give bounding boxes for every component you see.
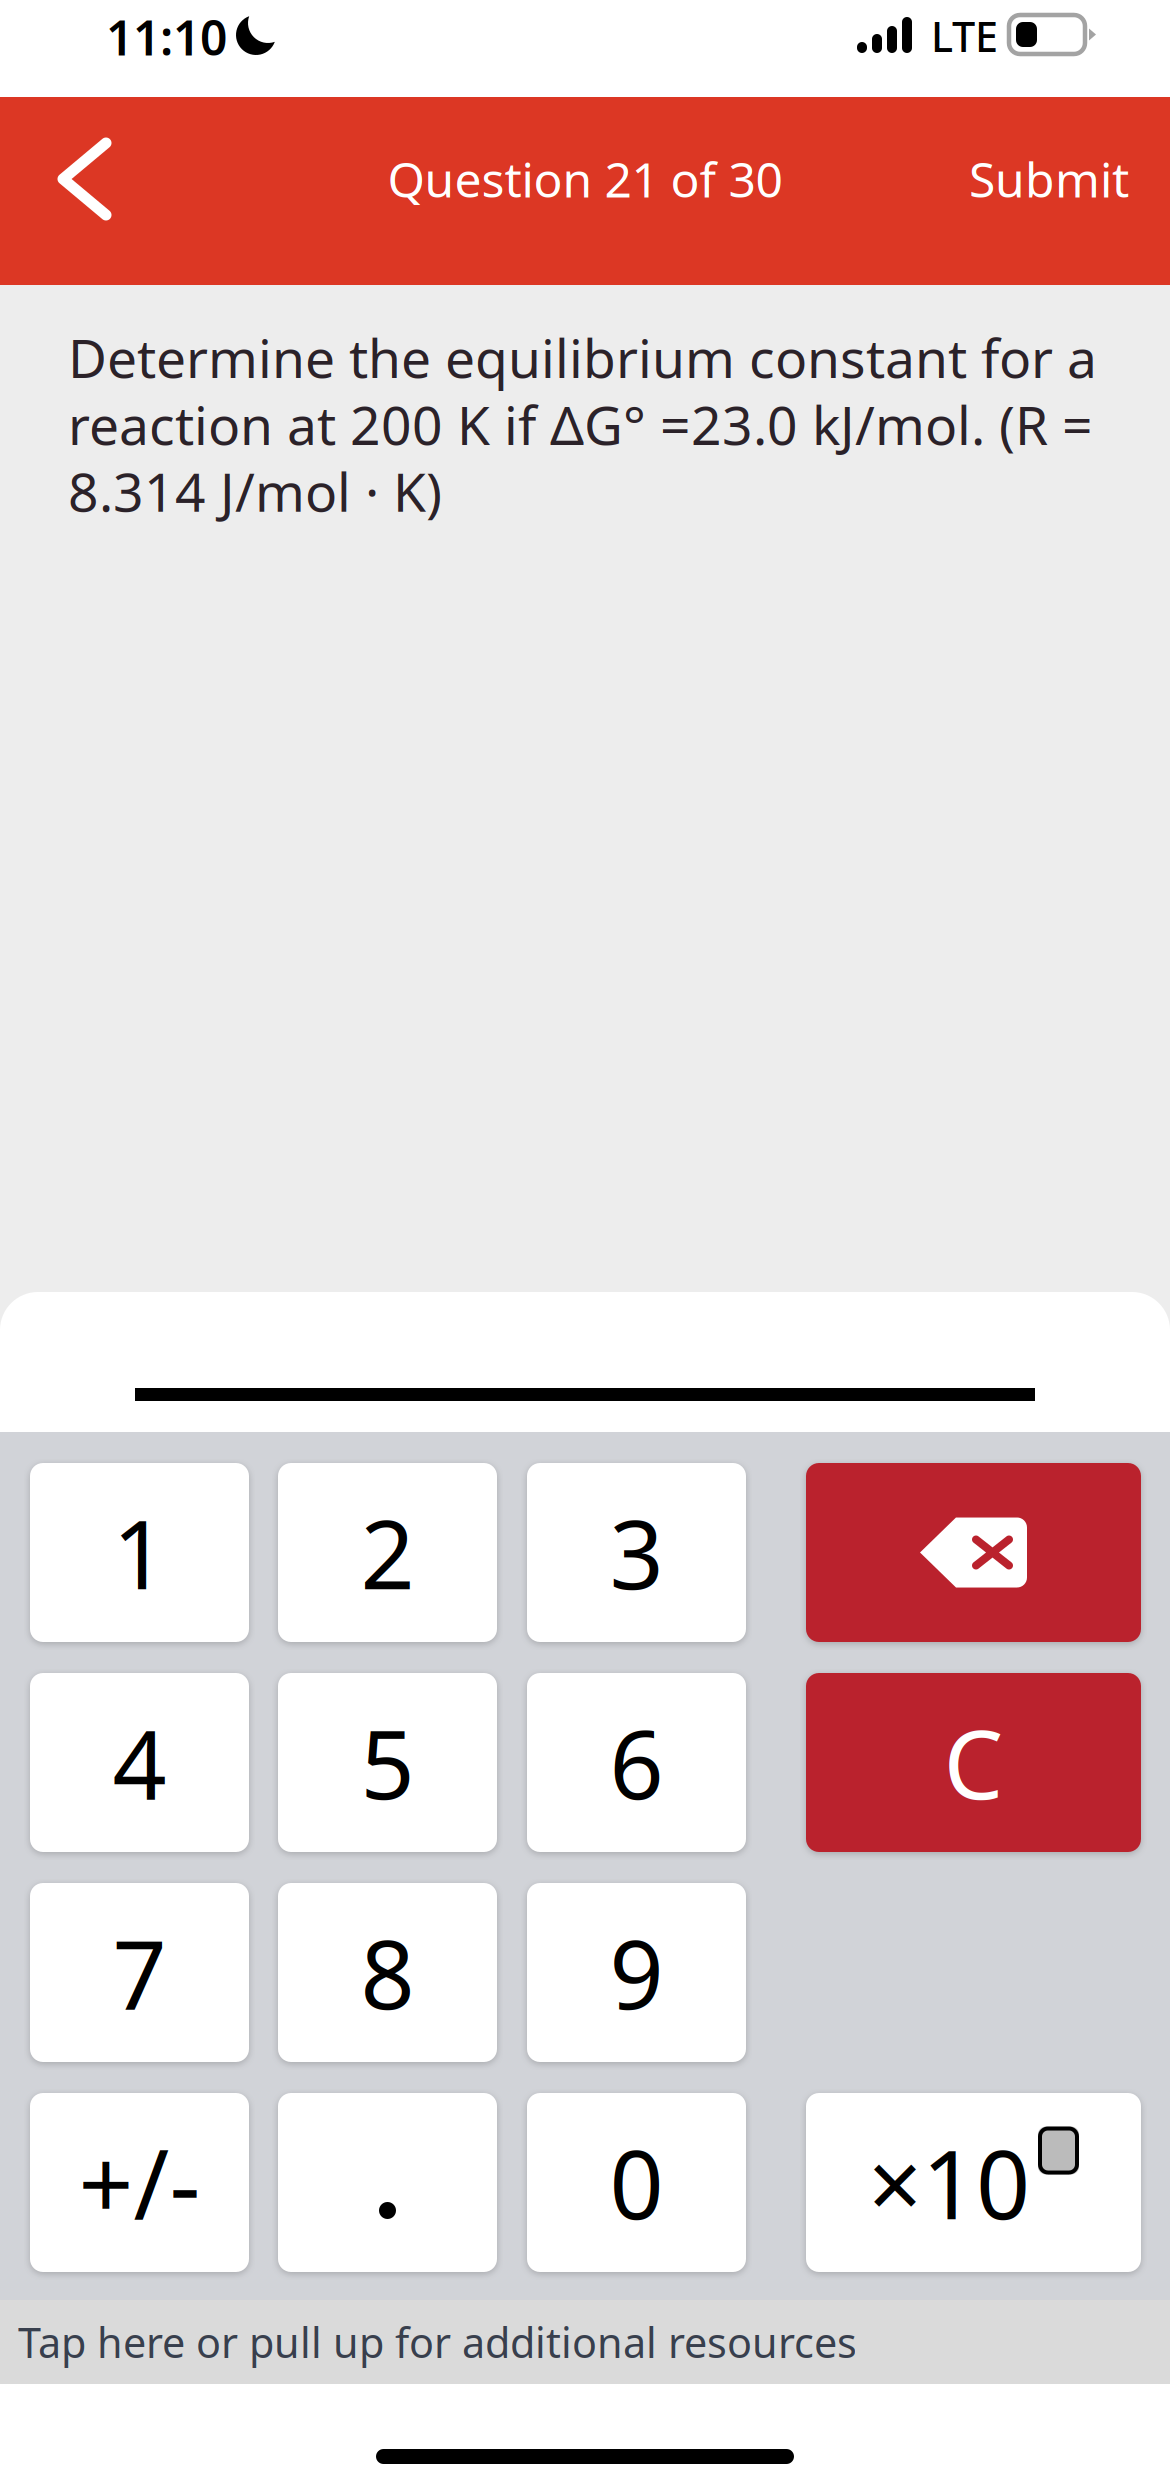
button[interactable]: 4: [30, 1673, 249, 1852]
button[interactable]: Tap here or pull up for additional resou…: [0, 2300, 1152, 2384]
button[interactable]: +/-: [30, 2093, 249, 2272]
staticText: 3: [609, 1490, 663, 1615]
button[interactable]: Delete: [806, 1463, 1141, 1642]
button[interactable]: 9: [527, 1883, 746, 2062]
staticText: 2: [360, 1490, 414, 1615]
button[interactable]: 6: [527, 1673, 746, 1852]
button[interactable]: Decimal point: [278, 2093, 497, 2272]
button[interactable]: 5: [278, 1673, 497, 1852]
staticText: Question 21 of 30: [387, 147, 782, 211]
button[interactable]: Submit: [944, 101, 1154, 257]
staticText: 1: [112, 1490, 166, 1615]
button[interactable]: 2: [278, 1463, 497, 1642]
button[interactable]: 7: [30, 1883, 249, 2062]
button[interactable]: 8: [278, 1883, 497, 2062]
staticText: +/-: [78, 2119, 200, 2246]
staticText: 9: [609, 1910, 663, 2035]
staticText: LTE: [931, 9, 998, 63]
staticText: 11:10: [106, 5, 227, 69]
button[interactable]: 3: [527, 1463, 746, 1642]
staticText: 4: [112, 1700, 166, 1825]
button[interactable]: 0: [527, 2093, 746, 2272]
staticText: ×10: [868, 2120, 1030, 2245]
staticText: 0: [609, 2120, 663, 2245]
staticText: Submit: [969, 147, 1129, 211]
staticText: 8: [360, 1910, 414, 2035]
staticText: C: [943, 1700, 1003, 1825]
button[interactable]: 1: [30, 1463, 249, 1642]
button[interactable]: Clear: [806, 1673, 1141, 1852]
staticText: 5: [360, 1700, 414, 1825]
button[interactable]: Back: [30, 113, 180, 269]
staticText: 6: [609, 1700, 663, 1825]
staticText: Tap here or pull up for additional resou…: [18, 2315, 857, 2369]
staticText: Determine the equilibrium constant for a…: [68, 322, 1097, 526]
staticText: 7: [112, 1910, 166, 2035]
button[interactable]: Times ten to the power of: [806, 2093, 1141, 2272]
